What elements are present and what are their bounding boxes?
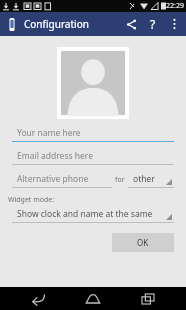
staticText: Show clock and name at the same time. [17, 208, 166, 220]
staticText: Alternative phone numbe [17, 173, 112, 185]
staticText: Your name here [17, 127, 81, 139]
button[interactable]: other [128, 173, 174, 188]
staticText: Configuration [24, 17, 89, 31]
button[interactable]: Email address here [12, 150, 174, 165]
button[interactable]: OK [112, 233, 174, 252]
staticText: other [133, 173, 166, 185]
button[interactable]: Back [21, 287, 55, 310]
staticText: Email address here [17, 150, 93, 162]
staticText: Widget mode: [8, 195, 55, 205]
staticText: ? [150, 16, 156, 32]
button[interactable]: Profile photo [61, 51, 125, 115]
staticText: for [115, 175, 125, 185]
button[interactable]: Share [120, 13, 142, 35]
button[interactable]: Show clock and name at the same time. [12, 208, 174, 223]
button[interactable]: Home [76, 287, 110, 310]
staticText: OK [137, 237, 149, 248]
button[interactable]: Alternative phone numbe [12, 173, 112, 188]
button[interactable]: Your name here [12, 127, 174, 142]
staticText: 22:29 [166, 1, 184, 11]
button[interactable]: More options [164, 14, 184, 34]
button[interactable]: App icon [5, 17, 19, 31]
button[interactable]: Recent apps [131, 287, 165, 310]
button[interactable]: Help [142, 13, 164, 35]
